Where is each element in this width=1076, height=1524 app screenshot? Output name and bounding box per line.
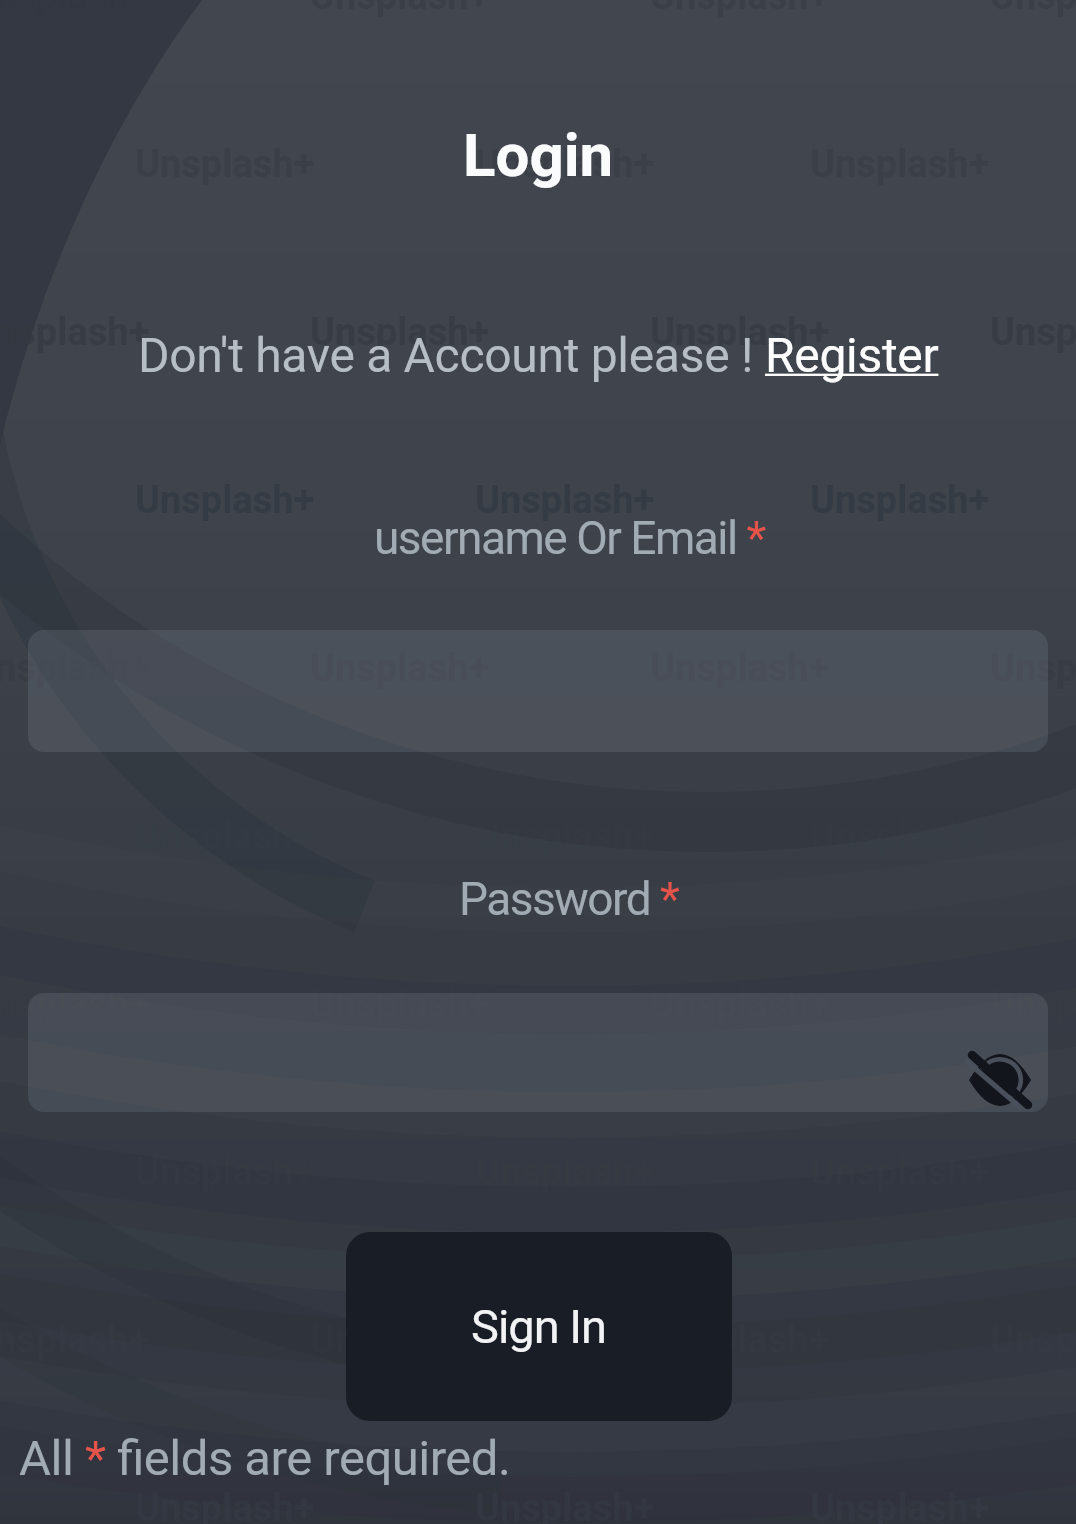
staticText: Unsplash+: [650, 310, 830, 355]
staticText: Unsplash+: [475, 142, 655, 187]
button[interactable]: Sign In: [346, 1232, 732, 1421]
staticText: Unsplash+: [990, 0, 1076, 19]
staticText: All * fields are required.: [19, 1430, 511, 1487]
staticText: Unsplash+: [0, 310, 150, 355]
staticText: Unsplash+: [0, 982, 150, 1027]
staticText: Unsplash+: [990, 310, 1076, 355]
staticText: Unsplash+: [0, 646, 150, 691]
staticText: username Or Email *: [374, 511, 765, 565]
staticText: Unsplash+: [990, 982, 1076, 1027]
staticText: Unsplash+: [650, 982, 830, 1027]
staticText: Unsplash+: [810, 478, 990, 523]
staticText: Unsplash+: [990, 646, 1076, 691]
button[interactable]: [28, 993, 1048, 1112]
staticText: Unsplash+: [475, 478, 655, 523]
staticText: Don't have a Account please !: [138, 327, 765, 383]
staticText: Unsplash+: [135, 478, 315, 523]
staticText: Unsplash+: [310, 1318, 490, 1363]
staticText: Unsplash+: [310, 982, 490, 1027]
staticText: Login: [463, 120, 614, 190]
button[interactable]: Register: [765, 327, 939, 383]
staticText: Sign In: [471, 1299, 607, 1354]
staticText: Unsplash+: [310, 310, 490, 355]
staticText: Unsplash+: [650, 1318, 830, 1363]
staticText: Password *: [459, 872, 679, 926]
